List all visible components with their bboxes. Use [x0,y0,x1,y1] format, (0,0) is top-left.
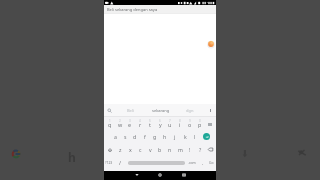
button[interactable]: 4 [135,117,145,130]
staticText: z [119,146,122,153]
staticText: o [188,121,192,128]
button[interactable]: 8 [175,117,185,130]
button[interactable]: More options [205,104,216,117]
staticText: h [163,133,167,140]
button[interactable]: k [180,130,190,143]
staticText: ? [199,146,202,153]
button[interactable]: g [150,130,160,143]
staticText: ?123 [105,160,113,165]
staticText: h [68,149,76,165]
button[interactable]: a [110,130,120,143]
button[interactable]: ? [195,143,205,156]
button[interactable]: f [140,130,150,143]
button[interactable]: 5 [145,117,155,130]
staticText: f [144,133,146,140]
button[interactable]: ?123 [104,156,113,169]
button[interactable]: s [120,130,130,143]
button[interactable]: Backspace [205,143,215,156]
staticText: n [168,146,172,153]
button[interactable]: m [175,143,185,156]
button[interactable]: Backspace [205,117,215,130]
staticText: q [108,121,112,128]
staticText: v [149,146,152,153]
button[interactable]: l [190,130,200,143]
staticText: .com [188,160,196,165]
staticText: i [179,121,181,128]
button[interactable]: 9 [185,117,195,130]
button[interactable]: n [165,143,175,156]
button[interactable]: 3 [125,117,135,130]
staticText: 5 [149,119,151,123]
button[interactable]: Go [207,156,216,169]
button[interactable]: ! [185,143,195,156]
button[interactable]: d [130,130,140,143]
staticText: m [178,146,183,153]
button[interactable]: 0 [195,117,205,130]
staticText: Beli sekarang dengan saya [107,7,158,12]
staticText: sekarang [152,108,170,113]
staticText: / [119,159,122,166]
staticText: b [158,146,162,153]
staticText: 1 [109,119,111,123]
staticText: w [118,121,123,128]
staticText: x [129,146,132,153]
button[interactable]: 1 [105,117,115,130]
staticText: g [153,133,157,140]
button[interactable]: Search [104,104,115,117]
button[interactable]: h [160,130,170,143]
button[interactable]: Beli sekarang dengan saya [104,5,216,13]
button[interactable]: z [115,143,125,156]
button[interactable]: / [113,156,128,169]
button[interactable]: Compose [207,40,215,48]
button[interactable]: Back [125,171,149,180]
staticText: p [198,121,202,128]
staticText: 6 [159,119,161,123]
staticText: j [174,133,176,140]
staticText: r [139,121,142,128]
button[interactable]: 6 [155,117,165,130]
staticText: a [114,133,117,140]
button[interactable]: dgn [175,104,205,117]
button[interactable]: j [170,130,180,143]
staticText: l [194,133,196,140]
button[interactable]: . [198,156,207,169]
button[interactable]: Shift [105,143,115,156]
button[interactable]: 7 [165,117,175,130]
staticText: . [202,159,204,166]
staticText: k [184,133,187,140]
staticText: 7 [169,119,171,123]
staticText: e [128,121,132,128]
staticText: 8 [179,119,181,123]
staticText: ! [189,146,191,153]
button[interactable]: v [145,143,155,156]
staticText: 9 [189,119,191,123]
staticText: y [159,121,162,128]
staticText: 4 [139,119,141,123]
staticText: Go [209,160,214,165]
button[interactable]: Recents [172,171,196,180]
button[interactable]: Enter [200,130,213,143]
staticText: 3 [129,119,131,123]
staticText: dgn [186,108,194,113]
staticText: d [133,133,137,140]
staticText: u [168,121,172,128]
staticText: s [124,133,127,140]
staticText: Beli [127,108,134,113]
button[interactable]: b [155,143,165,156]
button[interactable]: x [125,143,135,156]
staticText: t [149,121,151,128]
button[interactable]: .com [185,156,198,169]
button[interactable]: Space [128,156,185,169]
staticText: 2 [119,119,121,123]
button[interactable]: c [135,143,145,156]
button[interactable]: Beli [115,104,146,117]
staticText: 0 [199,119,201,123]
staticText: c [139,146,142,153]
button[interactable]: Home [148,171,172,180]
button[interactable]: 2 [115,117,125,130]
button[interactable]: sekarang [146,104,175,117]
